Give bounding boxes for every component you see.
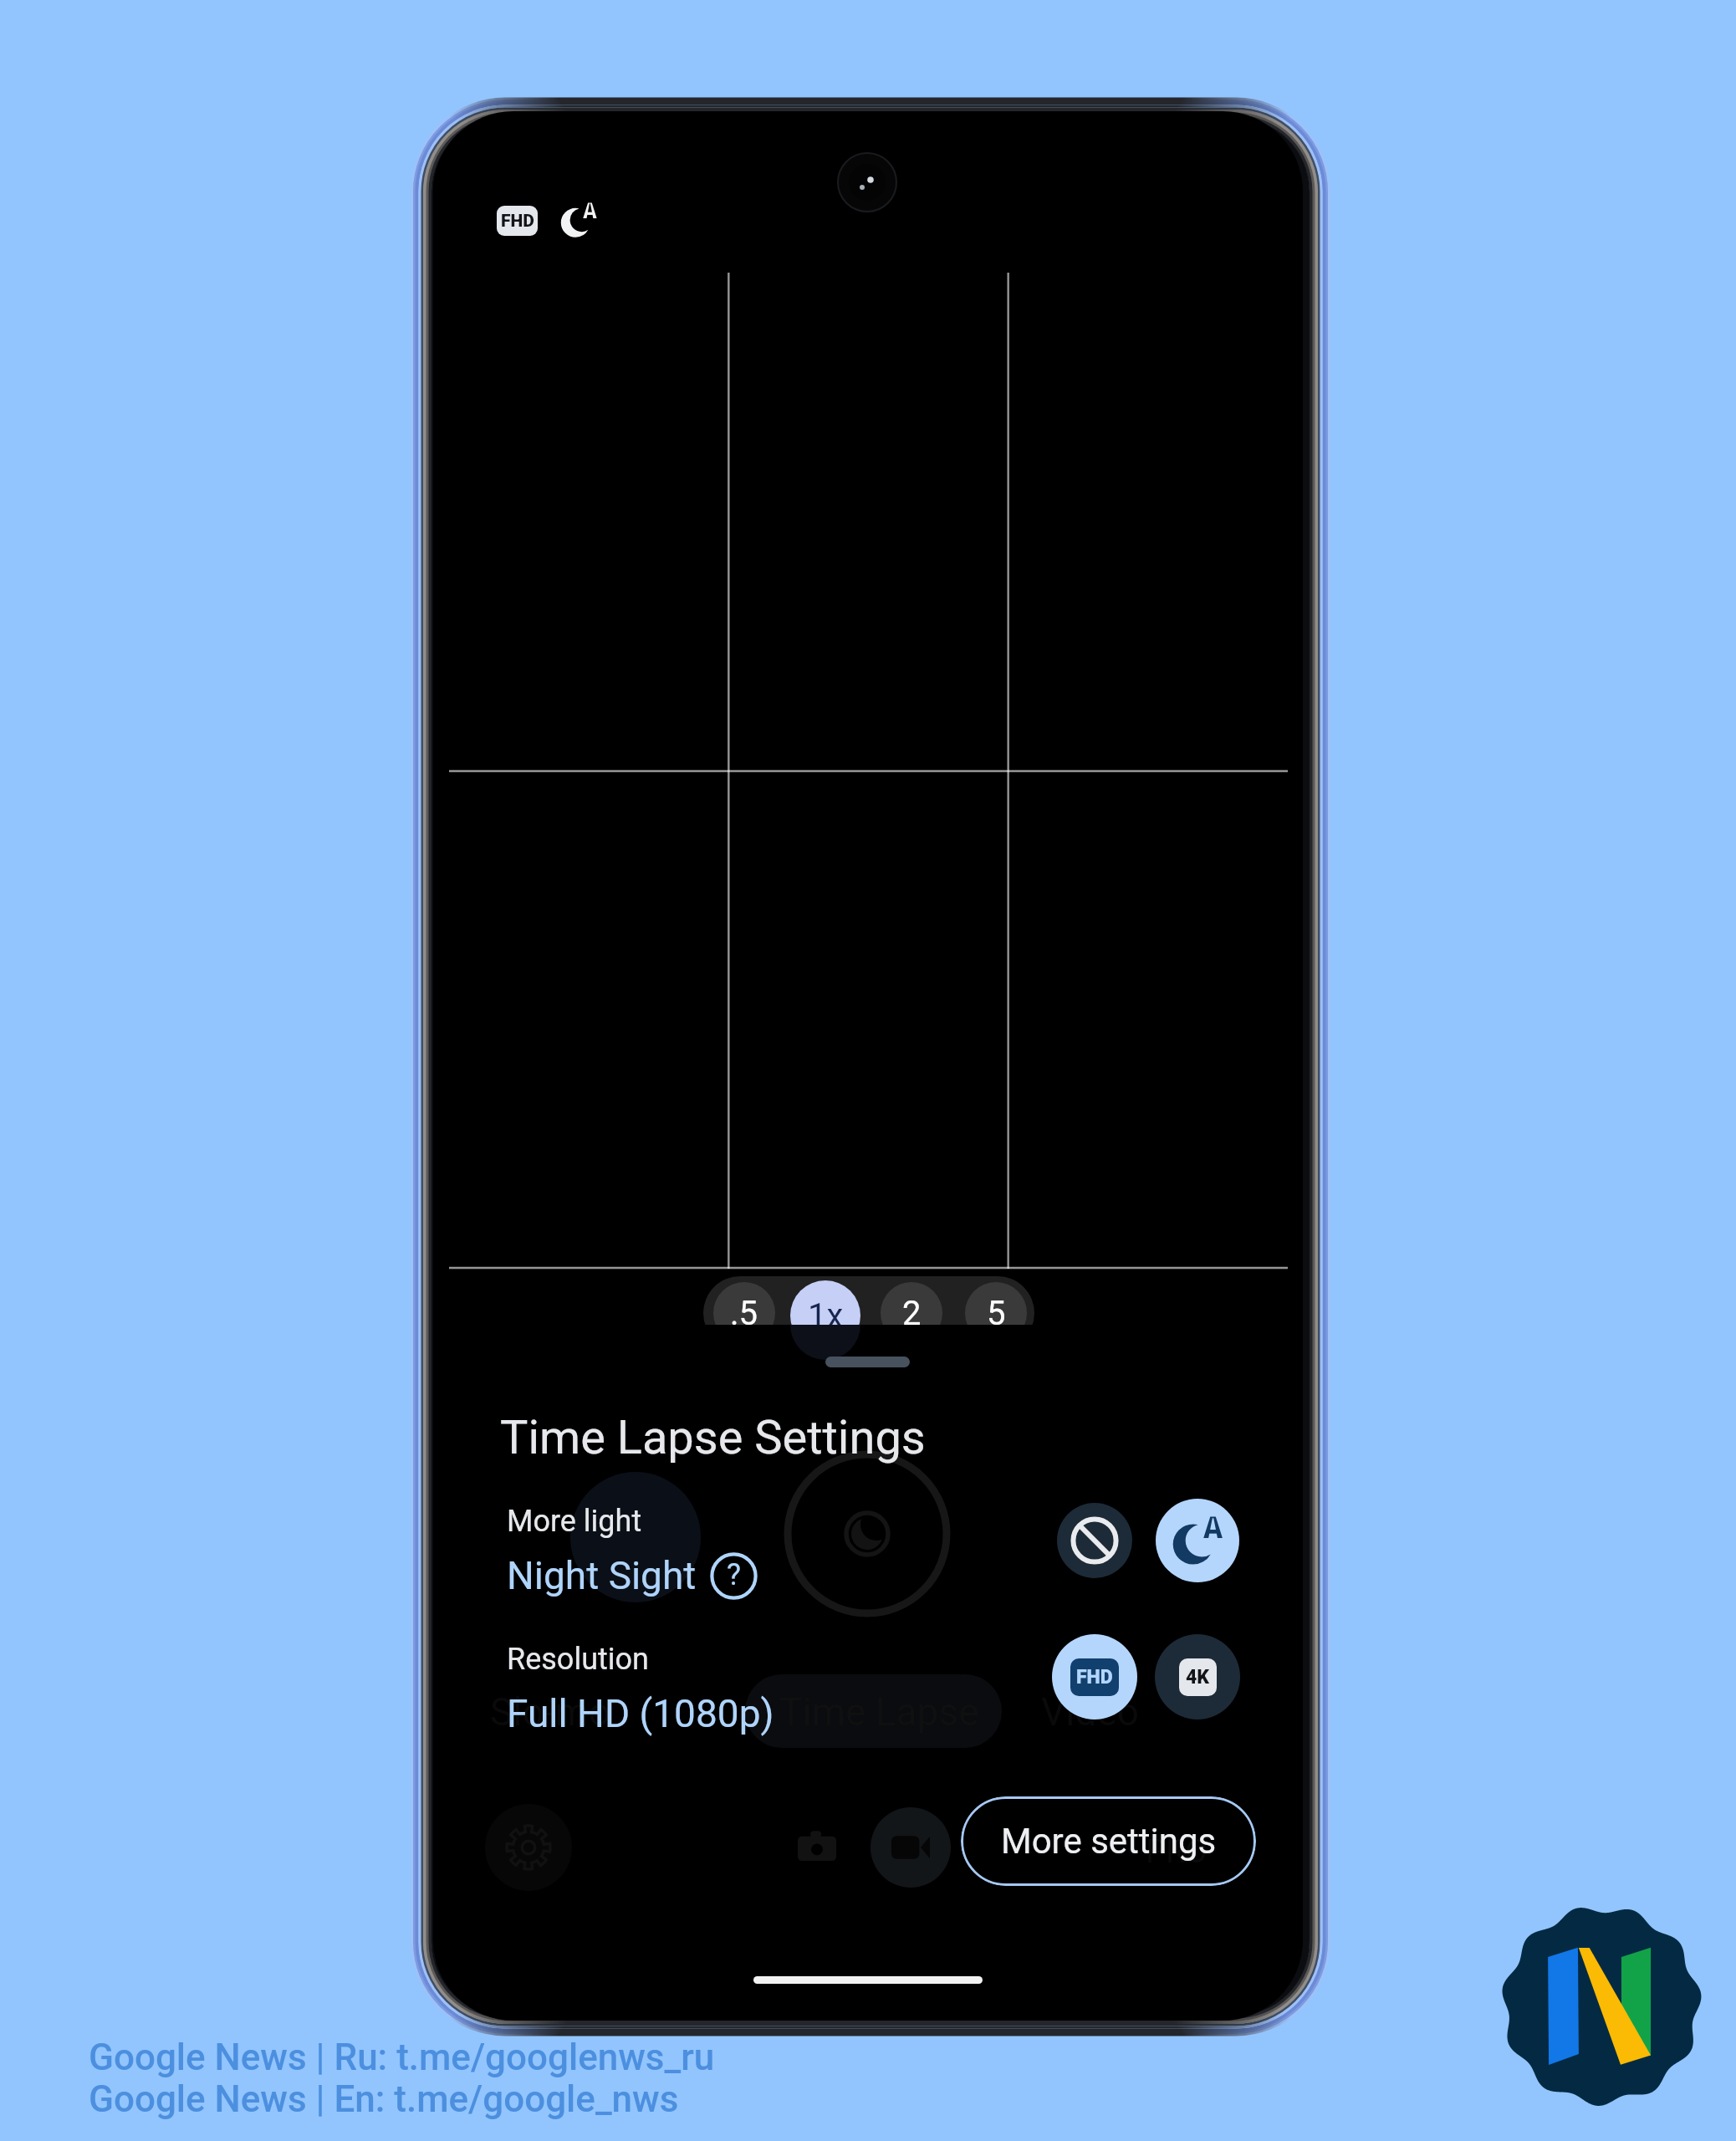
staticText: Resolution [507, 1642, 649, 1677]
button[interactable]: Resolution 4K [1155, 1634, 1240, 1719]
staticText: FHD [1076, 1666, 1113, 1689]
staticText: PRO [1146, 1833, 1208, 1871]
staticText: FHD [501, 211, 534, 232]
button[interactable]: Video resolution: FHD [497, 206, 538, 236]
button[interactable]: 1x [790, 1280, 860, 1351]
staticText: More settings [1001, 1821, 1217, 1862]
button[interactable]: 5 [965, 1282, 1027, 1344]
staticText: More light [507, 1504, 642, 1539]
button[interactable]: Resolution FHD [1052, 1634, 1137, 1719]
button[interactable]: Night Sight off [1057, 1503, 1132, 1578]
staticText: Video [1041, 1689, 1140, 1735]
button[interactable]: 2 [881, 1282, 942, 1344]
staticText: Google News | En: t.me/google_nws [89, 2077, 679, 2121]
staticText: Slo-mo [490, 1689, 611, 1735]
staticText: Google News | Ru: t.me/googlenws_ru [89, 2036, 715, 2079]
staticText: 4K [1186, 1666, 1210, 1689]
staticText: ? [727, 1557, 742, 1592]
button[interactable]: About Night Sight [710, 1552, 758, 1600]
button[interactable]: .5 [713, 1282, 775, 1344]
staticText: 1x [808, 1296, 844, 1336]
button[interactable]: Full HD (1080p) [507, 1691, 774, 1736]
staticText: .5 [730, 1294, 758, 1333]
button[interactable]: Night Sight [507, 1553, 697, 1598]
staticText: Night Sight [507, 1553, 697, 1598]
staticText: 5 [987, 1294, 1006, 1333]
button[interactable]: Night Sight auto [1156, 1499, 1239, 1582]
button[interactable]: Night Sight auto [561, 202, 596, 238]
staticText: Time Lapse Settings [500, 1410, 926, 1465]
staticText: 2 [902, 1294, 922, 1333]
staticText: Full HD (1080p) [507, 1691, 774, 1736]
button[interactable]: More settings [961, 1796, 1256, 1886]
